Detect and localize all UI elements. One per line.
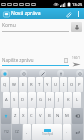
staticText: R [30,82,33,88]
button[interactable]: N [54,108,62,124]
button[interactable]: A [3,92,10,108]
staticText: U [54,82,58,88]
button[interactable]: Backspace [72,108,83,124]
staticText: Z [14,113,17,119]
staticText: Komu [2,22,16,29]
staticText: L [76,97,79,103]
staticText: K [67,97,70,103]
button[interactable]: Up [2,10,10,18]
button[interactable]: Space [32,124,62,140]
staticText: H [48,97,52,103]
button[interactable]: O [68,77,75,92]
button[interactable]: R [28,77,35,92]
button[interactable]: Symbols [1,124,11,140]
staticText: ?12 [4,130,9,134]
button[interactable]: G [37,92,45,108]
button[interactable]: F [28,92,36,108]
staticText: S [13,97,16,103]
button[interactable]: Keyboard option [76,70,83,77]
button[interactable]: V [36,108,44,124]
button[interactable]: Keyboard option [39,70,46,77]
staticText: N [56,113,60,119]
staticText: A [5,97,8,103]
button[interactable]: W [10,77,18,92]
button[interactable]: D [19,92,27,108]
button[interactable]: Enter [72,124,83,140]
staticText: CZ [15,130,19,134]
staticText: W [12,82,16,88]
button[interactable]: . [63,124,71,140]
button[interactable]: Y [44,77,51,92]
button[interactable]: Keyboard option [1,70,8,77]
button[interactable]: Shift [1,108,11,124]
button[interactable]: B [45,108,53,124]
staticText: Y [46,82,49,88]
button[interactable]: X [20,108,27,124]
button[interactable]: K [64,92,72,108]
staticText: P [78,82,81,88]
button[interactable]: H [46,92,54,108]
staticText: C [30,113,33,119]
button[interactable]: U [52,77,59,92]
staticText: Q [3,82,7,88]
button[interactable]: C [28,108,35,124]
button[interactable]: Send [70,56,82,68]
staticText: E [22,82,25,88]
staticText: . [66,129,68,135]
staticText: D [21,97,25,103]
button[interactable]: L [73,92,81,108]
staticText: I [63,82,65,88]
button[interactable]: More options [74,10,82,18]
button[interactable]: Napište zprávu [2,57,69,66]
staticText: M [65,113,69,119]
button[interactable]: P [76,77,83,92]
button[interactable]: T [36,77,43,92]
button[interactable]: S [11,92,18,108]
staticText: Touchpal [42,132,53,136]
staticText: V [39,113,42,119]
button[interactable]: Add recipient from contacts [71,22,82,32]
staticText: 13:25 [72,2,83,7]
button[interactable]: Language [12,124,22,140]
staticText: B [48,113,51,119]
staticText: 160/1 [72,56,80,60]
staticText: O [70,82,74,88]
staticText: X [22,113,25,119]
staticText: J [58,97,60,103]
button[interactable]: Z [12,108,19,124]
button[interactable]: Voice input [57,70,64,77]
staticText: Nová zpráva [11,10,41,17]
staticText: Napište zprávu [2,57,34,63]
button[interactable]: Keyboard option [20,70,27,77]
staticText: T [38,82,41,88]
button[interactable]: M [63,108,71,124]
staticText: F [31,97,34,103]
staticText: , [26,129,28,135]
button[interactable]: Q [1,77,9,92]
button[interactable]: J [55,92,63,108]
staticText: G [39,97,43,103]
button[interactable]: Komu [2,22,69,32]
button[interactable]: E [19,77,27,92]
button[interactable]: I [60,77,67,92]
button[interactable]: , [23,124,31,140]
button[interactable]: Attach [63,9,73,19]
